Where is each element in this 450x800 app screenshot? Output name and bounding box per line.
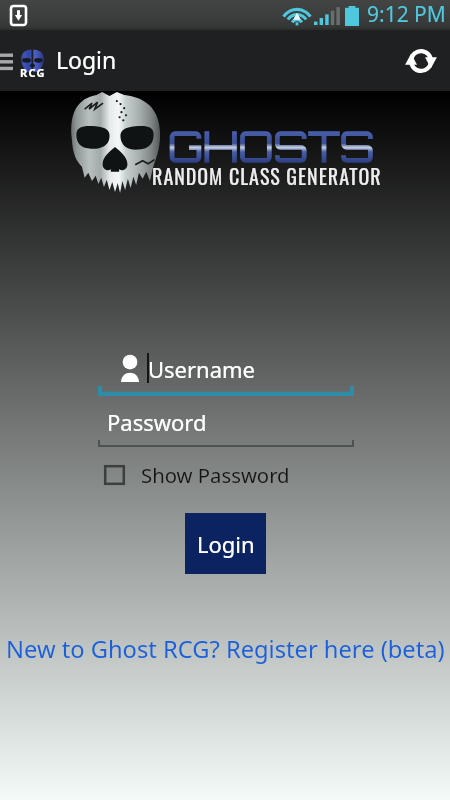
- staticText: New to Ghost RCG? Register here (beta): [6, 633, 445, 665]
- button[interactable]: New to Ghost RCG? Register here (beta): [0, 628, 450, 670]
- button[interactable]: Open navigation drawer: [0, 30, 52, 91]
- staticText: 9:12 PM: [367, 0, 446, 29]
- staticText: Username: [148, 354, 256, 384]
- button[interactable]: Refresh: [394, 30, 450, 91]
- staticText: Login: [197, 529, 255, 559]
- staticText: RANDOM CLASS GENERATOR: [152, 161, 382, 191]
- button[interactable]: Login: [185, 513, 266, 574]
- button[interactable]: Username: [98, 350, 354, 394]
- staticText: Show Password: [141, 461, 290, 489]
- button[interactable]: Show Password: [100, 459, 290, 491]
- staticText: GHOSTS: [168, 120, 375, 173]
- button[interactable]: Password: [98, 402, 354, 442]
- staticText: Password: [107, 407, 207, 437]
- staticText: RCG: [20, 65, 46, 80]
- staticText: Login: [56, 44, 117, 75]
